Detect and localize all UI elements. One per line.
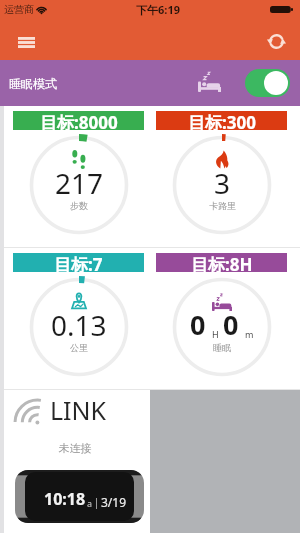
staticText: a: [87, 497, 93, 509]
staticText: m: [245, 328, 254, 340]
staticText: 目标:7: [54, 253, 103, 272]
staticText: 3/19: [101, 494, 127, 510]
staticText: 运营商: [4, 3, 34, 16]
staticText: 3: [214, 164, 231, 202]
staticText: H: [212, 328, 219, 340]
staticText: 217: [55, 164, 104, 202]
staticText: 目标:8H: [191, 253, 253, 272]
staticText: 目标:8000: [40, 111, 118, 130]
button[interactable]: Menu: [12, 28, 40, 56]
staticText: LINK: [50, 393, 107, 427]
staticText: 睡眠: [213, 342, 231, 353]
button[interactable]: [245, 69, 290, 97]
staticText: 卡路里: [209, 200, 236, 211]
staticText: 睡眠模式: [9, 76, 57, 91]
staticText: 0: [223, 306, 239, 343]
button[interactable]: 睡眠模式: [0, 60, 300, 106]
staticText: 步数: [70, 200, 88, 211]
staticText: 下午6:19: [136, 2, 180, 17]
staticText: 目标:300: [188, 111, 256, 130]
button[interactable]: 目标:7: [0, 248, 150, 390]
button[interactable]: 目标:8000: [0, 106, 150, 248]
staticText: 未连接: [0, 441, 150, 455]
button[interactable]: Sync: [262, 27, 290, 55]
button[interactable]: LINK: [0, 390, 150, 533]
staticText: 10:18: [44, 488, 86, 510]
button[interactable]: 目标:8H: [150, 248, 300, 390]
staticText: 0.13: [51, 306, 107, 344]
staticText: 公里: [70, 342, 88, 353]
staticText: 0: [190, 306, 206, 343]
button[interactable]: 目标:300: [150, 106, 300, 248]
